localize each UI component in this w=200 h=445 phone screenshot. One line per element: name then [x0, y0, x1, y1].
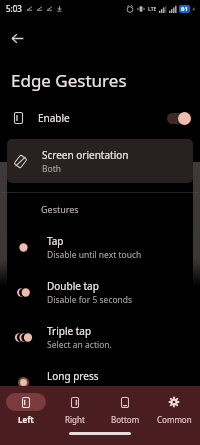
staticText: Select an action. — [47, 339, 112, 351]
staticText: Edge Gestures — [11, 69, 127, 92]
button[interactable]: Common — [151, 393, 197, 425]
staticText: 61 — [181, 5, 188, 13]
button[interactable]: Enable — [0, 101, 200, 135]
button[interactable]: Enable toggle — [165, 111, 191, 125]
staticText: Left — [18, 414, 34, 425]
staticText: Triple tap — [47, 324, 92, 338]
staticText: Long press — [47, 369, 99, 383]
staticText: Bottom — [111, 414, 140, 425]
staticText: Enable — [38, 111, 70, 125]
button[interactable]: Double tap — [0, 270, 200, 315]
staticText: Both — [42, 163, 61, 175]
staticText: Power dialog — [47, 384, 100, 396]
button[interactable]: Triple tap — [0, 315, 200, 360]
button[interactable]: Right — [52, 393, 98, 425]
staticText: Disable for 5 seconds — [47, 294, 133, 306]
staticText: ⚡ — [192, 6, 196, 12]
button[interactable]: Back — [5, 26, 29, 50]
staticText: Double tap — [47, 279, 99, 293]
staticText: 5:03 — [6, 3, 22, 14]
button[interactable]: Left — [3, 393, 49, 425]
staticText: Right — [65, 414, 85, 425]
staticText: Tap — [47, 234, 64, 248]
button[interactable]: Bottom — [102, 393, 148, 425]
button[interactable]: Screen orientation — [7, 139, 193, 183]
button[interactable]: Tap — [0, 225, 200, 270]
staticText: Disable until next touch — [47, 249, 142, 261]
button[interactable]: Long press — [0, 360, 200, 405]
staticText: Common — [157, 414, 192, 425]
staticText: Gestures — [41, 203, 79, 215]
staticText: Screen orientation — [42, 148, 129, 162]
staticText: LTE — [148, 6, 157, 13]
